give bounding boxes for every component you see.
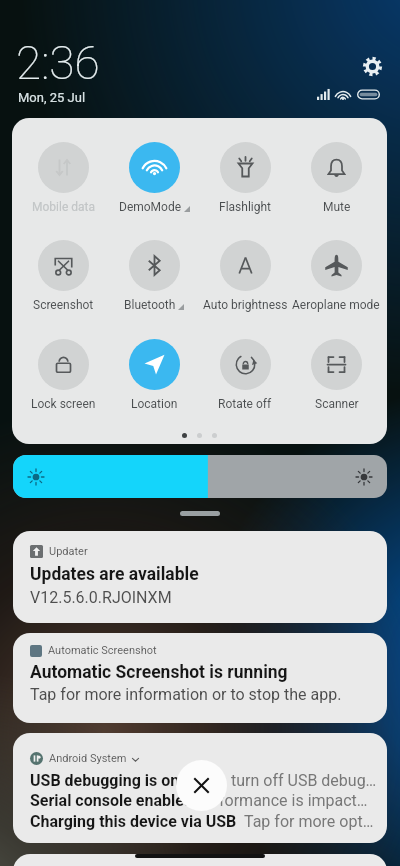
button[interactable]: Rotate off: [200, 339, 290, 411]
staticText: Screenshot: [33, 298, 94, 312]
staticText: Mute: [323, 200, 351, 214]
staticText: DemoMode: [119, 200, 182, 214]
button[interactable]: Aeroplane mode: [291, 240, 381, 312]
staticText: USB debugging is on: [30, 771, 180, 790]
button[interactable]: Mobile data: [18, 142, 108, 214]
staticText: formance is impact…: [219, 791, 368, 810]
staticText: Scanner: [315, 397, 359, 411]
button[interactable]: Scanner: [291, 339, 381, 411]
staticText: Mon, 25 Jul: [18, 90, 86, 105]
button[interactable]: Flashlight: [200, 142, 290, 214]
button[interactable]: Android System: [13, 733, 387, 843]
staticText: Auto brightness: [203, 298, 288, 312]
staticText: V12.5.6.0.RJOINXM: [30, 588, 172, 607]
staticText: 2:36: [16, 36, 100, 90]
button[interactable]: Settings: [362, 56, 383, 77]
button[interactable]: Lock screen: [18, 339, 108, 411]
staticText: Aeroplane mode: [292, 298, 380, 312]
staticText: Charging this device via USB: [30, 812, 237, 831]
button[interactable]: Auto brightness: [200, 240, 290, 312]
staticText: Location: [131, 397, 178, 411]
staticText: Lock screen: [31, 397, 96, 411]
button[interactable]: Automatic Screenshot: [13, 633, 387, 723]
button[interactable]: [13, 854, 387, 866]
staticText: Updater: [49, 545, 88, 558]
button[interactable]: Mute: [291, 142, 381, 214]
staticText: Tap for more information or to stop the …: [30, 685, 342, 704]
button[interactable]: Bluetooth: [109, 240, 199, 312]
staticText: Bluetooth: [124, 298, 176, 312]
staticText: Rotate off: [218, 397, 272, 411]
staticText: Automatic Screenshot is running: [30, 662, 288, 683]
button[interactable]: Brightness: [13, 455, 387, 498]
staticText: Android System: [49, 752, 127, 765]
button[interactable]: DemoMode: [109, 142, 199, 214]
staticText: Serial console enabled: [30, 791, 193, 810]
staticText: Tap for more opt…: [244, 812, 374, 831]
staticText: turn off USB debug…: [231, 771, 377, 790]
button[interactable]: Screenshot: [18, 240, 108, 312]
staticText: Updates are available: [30, 564, 199, 585]
staticText: Automatic Screenshot: [48, 644, 157, 657]
staticText: Mobile data: [32, 200, 95, 214]
button[interactable]: Dismiss all notifications: [176, 760, 227, 811]
button[interactable]: Location: [109, 339, 199, 411]
button[interactable]: Updater: [13, 531, 387, 623]
staticText: Flashlight: [219, 200, 271, 214]
